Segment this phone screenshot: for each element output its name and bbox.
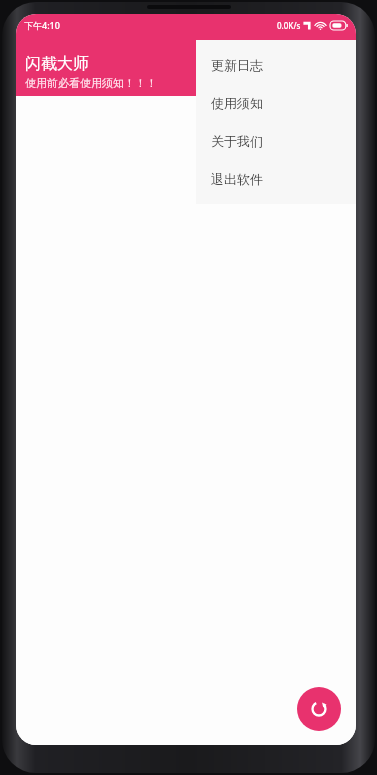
button[interactable]: 退出软件 bbox=[196, 160, 356, 198]
staticText: 使用前必看使用须知！！！ bbox=[25, 76, 157, 90]
staticText: 关于我们 bbox=[211, 133, 263, 149]
button[interactable]: 关于我们 bbox=[196, 122, 356, 160]
button[interactable]: 更新日志 bbox=[196, 46, 356, 84]
staticText: 闪截大师 bbox=[25, 54, 89, 74]
button[interactable]: 使用须知 bbox=[196, 84, 356, 122]
staticText: 下午4:10 bbox=[24, 19, 60, 31]
staticText: 更新日志 bbox=[211, 57, 263, 73]
staticText: 退出软件 bbox=[211, 171, 263, 187]
button[interactable]: Refresh bbox=[297, 687, 341, 731]
staticText: 0.0K/s bbox=[277, 20, 301, 31]
staticText: 使用须知 bbox=[211, 95, 263, 111]
